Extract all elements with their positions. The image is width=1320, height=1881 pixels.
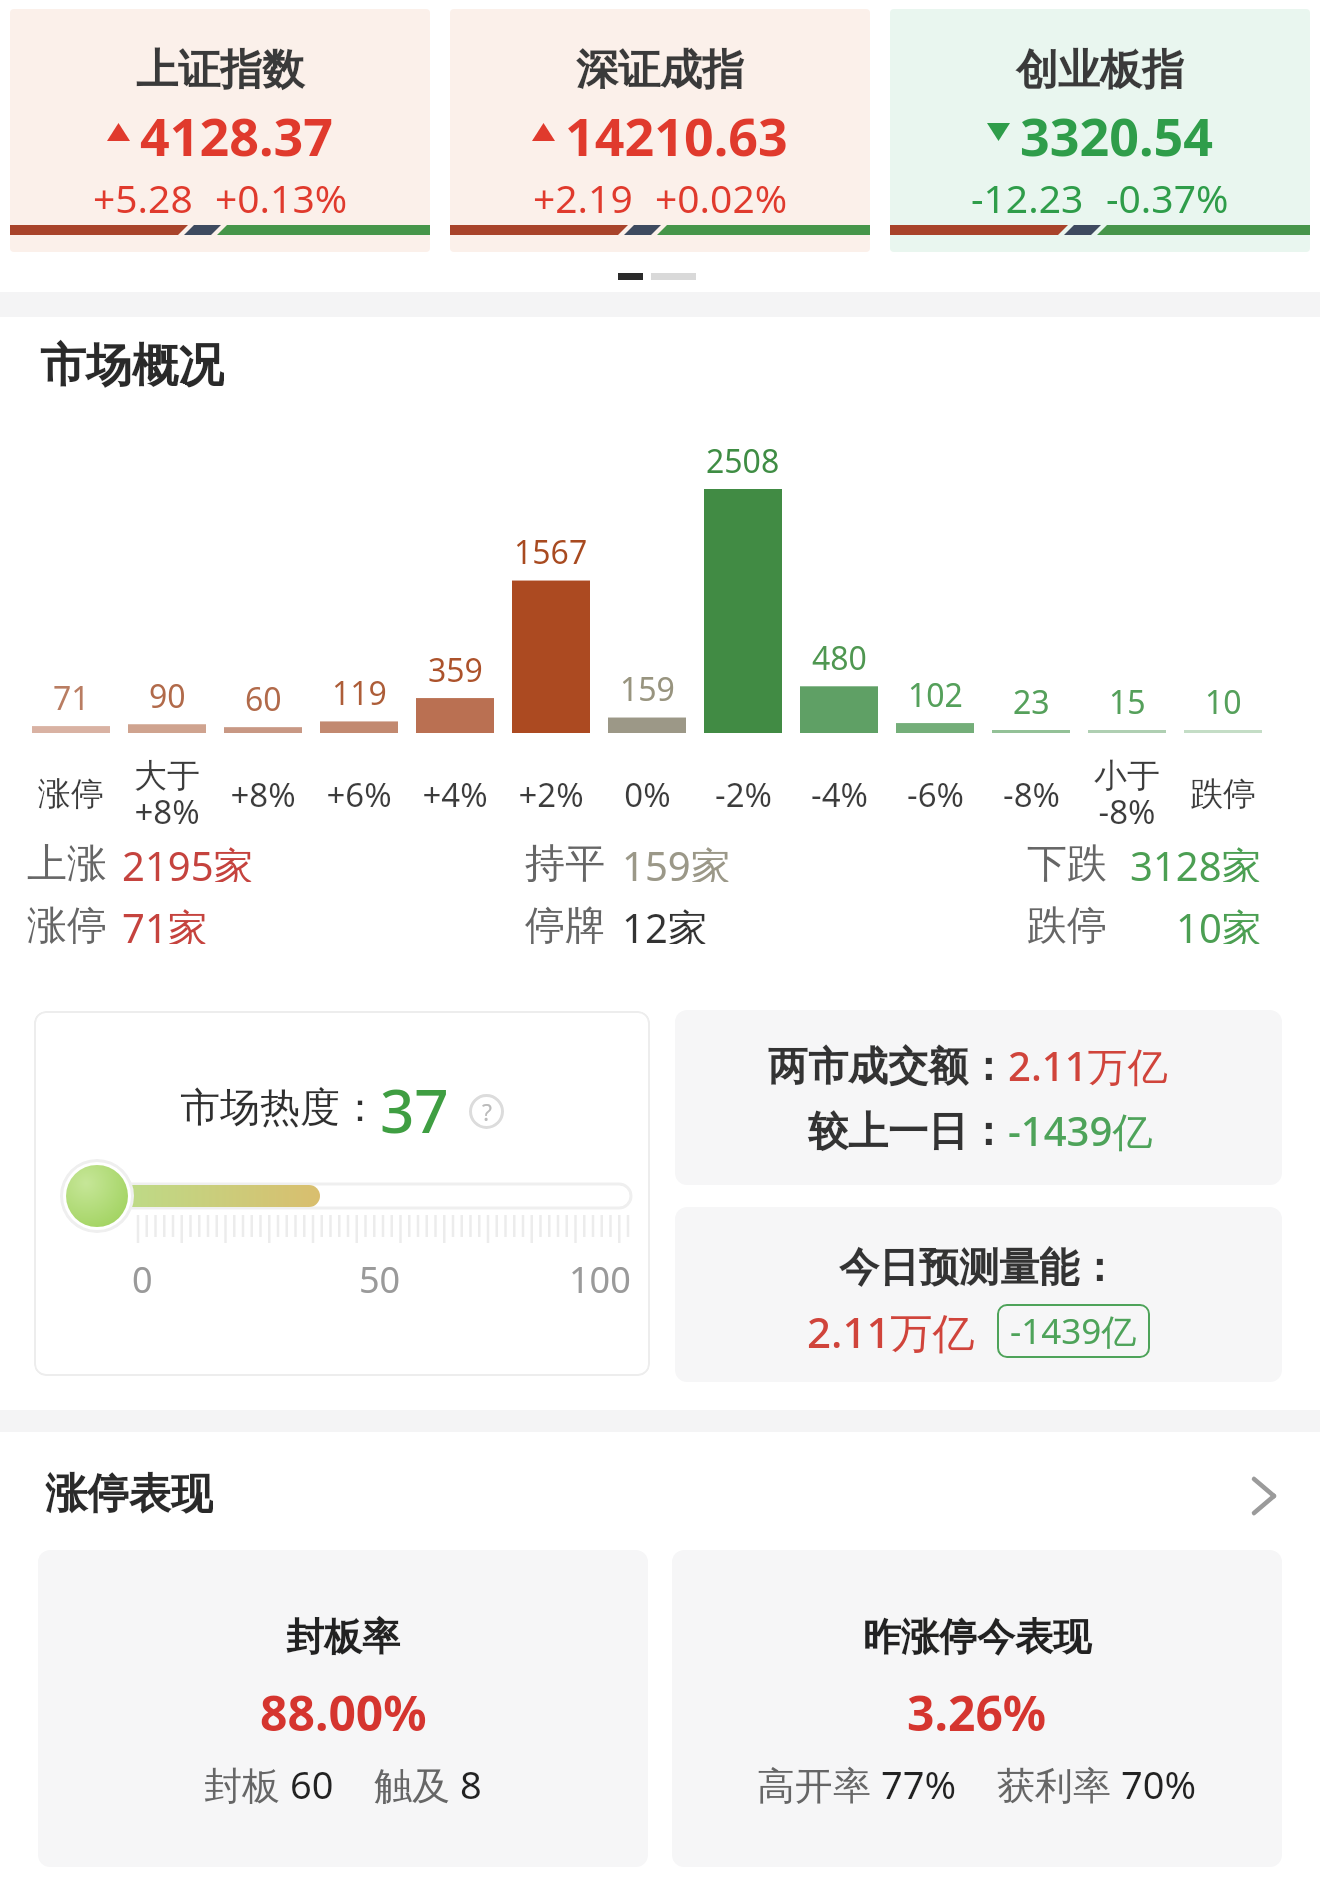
staticText: 上涨: [27, 838, 107, 882]
button[interactable]: 两市成交额：: [675, 1010, 1282, 1185]
staticText: +6%: [326, 772, 392, 817]
staticText: +8%: [230, 772, 296, 817]
staticText: 2.11万亿: [807, 1303, 975, 1359]
staticText: 较上一日：: [808, 1106, 1008, 1156]
staticText: -2%: [715, 772, 772, 817]
staticText: 71家: [122, 900, 208, 944]
staticText: -0.37%: [1106, 171, 1229, 224]
staticText: 2508: [706, 439, 780, 479]
staticText: 60: [290, 1758, 334, 1808]
staticText: 10家: [1176, 900, 1262, 944]
staticText: 0%: [624, 772, 671, 817]
button[interactable]: 市场热度：: [34, 1011, 650, 1376]
staticText: 两市成交额：: [768, 1041, 1008, 1091]
button[interactable]: 今日预测量能：: [675, 1207, 1282, 1382]
staticText: -6%: [907, 772, 964, 817]
staticText: 停牌: [525, 900, 605, 944]
staticText: 71: [53, 676, 90, 716]
staticText: 涨停: [38, 773, 104, 815]
staticText: 下跌: [1027, 838, 1107, 882]
staticText: 昨涨停今表现: [863, 1613, 1091, 1661]
staticText: 4128.37: [140, 100, 334, 164]
staticText: 12家: [622, 900, 708, 944]
staticText: 封板: [204, 1758, 290, 1808]
staticText: +5.28: [93, 171, 193, 224]
staticText: 触及: [374, 1758, 460, 1808]
staticText: 77%: [881, 1758, 957, 1808]
staticText: 小于 -8%: [1094, 755, 1160, 834]
staticText: 480: [812, 636, 867, 676]
staticText: 涨停: [27, 900, 107, 944]
staticText: 获利率: [997, 1758, 1121, 1808]
staticText: 涨停表现: [45, 1468, 213, 1518]
staticText: 持平: [525, 838, 605, 882]
staticText: +0.02%: [655, 171, 788, 224]
staticText: -8%: [1003, 772, 1060, 817]
staticText: -1439亿: [1008, 1103, 1153, 1158]
button[interactable]: 深证成指: [450, 9, 870, 252]
staticText: 封板率: [286, 1613, 400, 1661]
staticText: 359: [428, 648, 483, 688]
staticText: 90: [149, 674, 186, 714]
staticText: 3320.54: [1020, 100, 1214, 164]
staticText: 70%: [1121, 1758, 1197, 1808]
staticText: 88.00%: [260, 1680, 427, 1736]
staticText: 159家: [622, 838, 731, 882]
staticText: -1439亿: [1010, 1307, 1137, 1355]
staticText: -12.23: [971, 171, 1084, 224]
staticText: ?: [482, 1096, 492, 1127]
staticText: 2.11万亿: [1008, 1038, 1168, 1093]
staticText: 3.26%: [907, 1680, 1047, 1736]
staticText: 159: [620, 667, 675, 707]
staticText: 102: [908, 673, 963, 713]
staticText: +2%: [518, 772, 584, 817]
staticText: +2.19: [533, 171, 633, 224]
staticText: 跌停: [1190, 773, 1256, 815]
button[interactable]: 创业板指: [890, 9, 1310, 252]
staticText: -4%: [811, 772, 868, 817]
staticText: 23: [1013, 680, 1050, 720]
button[interactable]: 上证指数: [10, 9, 430, 252]
staticText: 100: [569, 1255, 631, 1295]
staticText: 2195家: [122, 838, 254, 882]
staticText: 50: [359, 1255, 401, 1295]
staticText: 上证指数: [136, 44, 304, 97]
staticText: 大于 +8%: [134, 755, 200, 834]
button[interactable]: 昨涨停今表现: [672, 1550, 1282, 1867]
staticText: +4%: [422, 772, 488, 817]
staticText: 119: [332, 671, 387, 711]
button[interactable]: [1250, 1476, 1278, 1516]
staticText: 8: [460, 1758, 482, 1808]
staticText: 高开率: [757, 1758, 881, 1808]
button[interactable]: 封板率: [38, 1550, 648, 1867]
staticText: +0.13%: [215, 171, 348, 224]
staticText: 创业板指: [1016, 44, 1184, 97]
staticText: 0: [132, 1255, 153, 1295]
staticText: 10: [1205, 680, 1242, 720]
staticText: 市场概况: [40, 337, 224, 393]
staticText: 跌停: [1027, 900, 1107, 944]
staticText: 37: [380, 1069, 449, 1137]
staticText: 1567: [514, 530, 588, 570]
staticText: 市场热度：: [180, 1082, 380, 1132]
staticText: 60: [245, 677, 282, 717]
staticText: 14210.63: [565, 100, 788, 164]
staticText: 深证成指: [576, 44, 744, 97]
staticText: 15: [1109, 680, 1146, 720]
staticText: 今日预测量能：: [839, 1242, 1119, 1292]
staticText: 3128家: [1130, 838, 1262, 882]
